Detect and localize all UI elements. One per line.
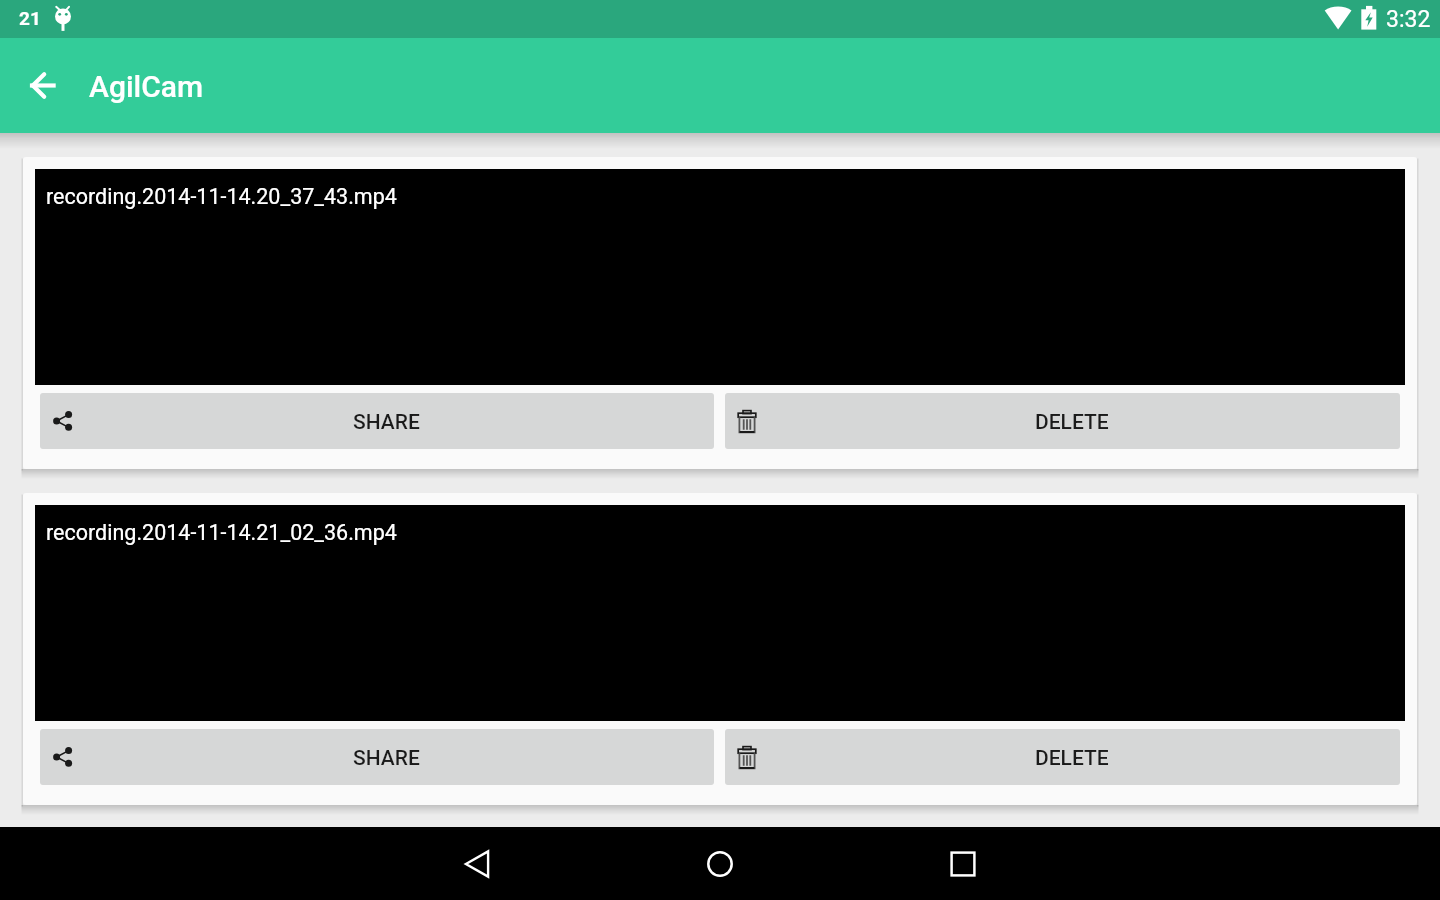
staticText: DELETE <box>1035 410 1109 435</box>
staticText: SHARE <box>353 410 420 435</box>
button[interactable]: DELETE <box>725 729 1400 785</box>
staticText: AgilCam <box>89 69 204 104</box>
button[interactable]: Recent apps <box>927 827 999 900</box>
button[interactable]: Back <box>441 827 513 900</box>
staticText: DELETE <box>1035 746 1109 771</box>
button[interactable]: SHARE <box>40 729 714 785</box>
button[interactable]: DELETE <box>725 393 1400 449</box>
button[interactable]: Navigate up <box>20 63 65 108</box>
staticText: recording.2014-11-14.20_37_43.mp4 <box>46 184 397 209</box>
button[interactable]: recording.2014-11-14.20_37_43.mp4 <box>35 169 1405 385</box>
button[interactable]: SHARE <box>40 393 714 449</box>
staticText: 21 <box>19 7 41 29</box>
button[interactable]: recording.2014-11-14.21_02_36.mp4 <box>35 505 1405 721</box>
staticText: 3:32 <box>1386 6 1431 33</box>
button[interactable]: Home <box>684 827 756 900</box>
staticText: recording.2014-11-14.21_02_36.mp4 <box>46 520 397 545</box>
staticText: SHARE <box>353 746 420 771</box>
